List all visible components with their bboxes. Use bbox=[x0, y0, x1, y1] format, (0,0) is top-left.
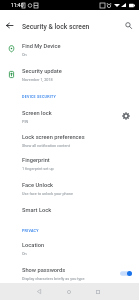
staticText: Smart Lock bbox=[22, 207, 122, 214]
staticText: Find My Device bbox=[22, 43, 122, 50]
button[interactable]: Location bbox=[0, 242, 139, 265]
staticText: Show all notification content bbox=[22, 143, 136, 147]
staticText: Security update bbox=[22, 68, 122, 75]
button[interactable]: Lock screen preferences bbox=[0, 134, 139, 157]
button[interactable]: Home bbox=[59, 283, 79, 300]
staticText: PIN bbox=[22, 119, 136, 123]
button[interactable]: Back bbox=[0, 14, 18, 36]
button[interactable]: Smart Lock bbox=[0, 207, 139, 230]
button[interactable]: Show passwords bbox=[0, 267, 139, 290]
staticText: DEVICE SECURITY bbox=[22, 95, 57, 99]
button[interactable]: Security update bbox=[0, 68, 139, 91]
staticText: Screen lock bbox=[22, 110, 122, 117]
button[interactable]: Find My Device bbox=[0, 43, 139, 66]
staticText: Use face to unlock your phone bbox=[22, 191, 136, 195]
staticText: Face Unlock bbox=[22, 182, 122, 189]
staticText: Security & lock screen bbox=[22, 23, 90, 31]
staticText: On bbox=[22, 251, 136, 255]
staticText: November 1, 2018 bbox=[22, 77, 136, 81]
button[interactable]: Screen lock settings bbox=[117, 107, 135, 125]
staticText: Location bbox=[22, 242, 122, 249]
button[interactable]: Recents bbox=[88, 283, 108, 300]
button[interactable]: Back bbox=[29, 283, 49, 300]
staticText: Display characters briefly as you type bbox=[22, 276, 136, 280]
staticText: On bbox=[22, 52, 136, 56]
staticText: 11:40 bbox=[11, 2, 24, 8]
staticText: Show passwords bbox=[22, 267, 122, 274]
staticText: Fingerprint bbox=[22, 157, 122, 164]
button[interactable]: Screen lock bbox=[0, 110, 139, 133]
staticText: 1 fingerprint set up bbox=[22, 166, 136, 170]
button[interactable]: Search bbox=[117, 14, 139, 36]
staticText: PRIVACY bbox=[22, 229, 39, 233]
button[interactable]: Show passwords toggle bbox=[116, 266, 136, 280]
staticText: Lock screen preferences bbox=[22, 134, 122, 141]
button[interactable]: Fingerprint bbox=[0, 157, 139, 180]
button[interactable]: Face Unlock bbox=[0, 182, 139, 205]
